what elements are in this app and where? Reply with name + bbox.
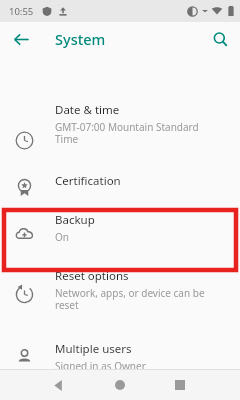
button[interactable]: Back <box>9 27 33 51</box>
staticText: Backup <box>55 212 95 228</box>
button[interactable]: Back <box>45 372 71 398</box>
staticText: System <box>55 29 106 49</box>
button[interactable]: Reset options <box>0 268 240 318</box>
staticText: Certification <box>55 173 121 189</box>
button[interactable]: Home <box>107 372 133 398</box>
staticText: Reset options <box>55 268 129 284</box>
staticText: Date & time <box>55 102 120 118</box>
staticText: 10:55 <box>9 5 34 18</box>
button[interactable]: Backup <box>0 212 240 252</box>
staticText: Signed in as Owner <box>55 359 146 373</box>
staticText: GMT-07:00 Mountain Standard Time <box>55 120 199 146</box>
button[interactable]: Date & time <box>0 102 240 151</box>
staticText: Network, apps, or device can be reset <box>55 286 205 312</box>
staticText: Multiple users <box>55 341 132 357</box>
button[interactable]: Search <box>208 27 232 51</box>
button[interactable]: Multiple users <box>0 341 240 381</box>
button[interactable]: Recent apps <box>167 372 193 398</box>
button[interactable]: Certification <box>0 173 240 201</box>
staticText: On <box>55 230 69 244</box>
